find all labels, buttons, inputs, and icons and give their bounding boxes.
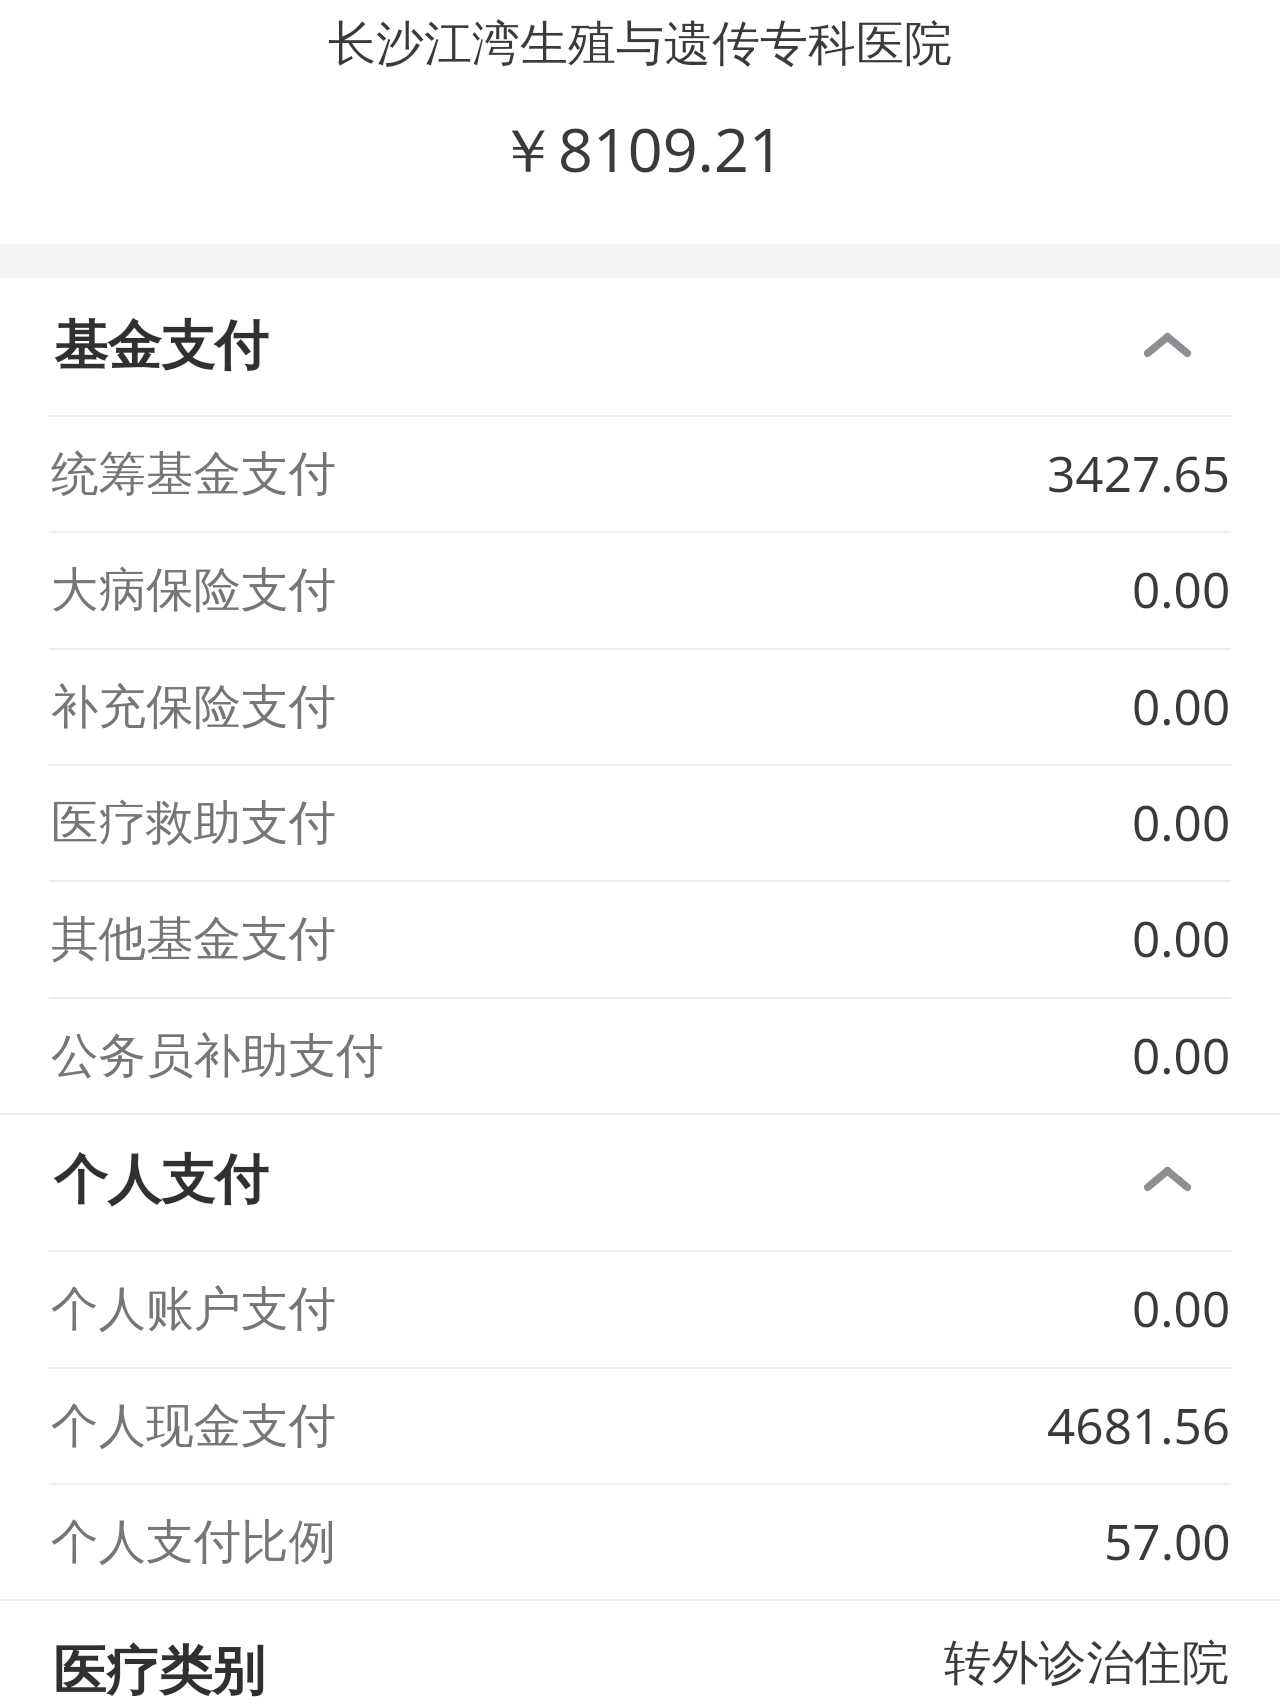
staticText: 其他基金支付: [51, 909, 336, 969]
staticText: 统筹基金支付: [51, 444, 336, 504]
staticText: 大病保险支付: [51, 560, 336, 620]
staticText: 4681.56: [1047, 1391, 1231, 1458]
button[interactable]: 个人账户支付: [0, 1252, 1280, 1366]
button[interactable]: 个人支付比例: [0, 1485, 1280, 1599]
staticText: 3427.65: [1047, 439, 1231, 506]
button[interactable]: 个人支付: [0, 1110, 1280, 1248]
staticText: 0.00: [1132, 672, 1231, 739]
staticText: 公务员补助支付: [51, 1026, 384, 1086]
staticText: 个人支付比例: [51, 1512, 336, 1572]
button[interactable]: 补充保险支付: [0, 650, 1280, 764]
other: Collapse section: [1144, 1167, 1191, 1191]
staticText: ￥8109.21: [497, 107, 784, 190]
staticText: 长沙江湾生殖与遗传专科医院: [328, 14, 952, 74]
button[interactable]: 公务员补助支付: [0, 999, 1280, 1113]
staticText: 0.00: [1132, 1274, 1231, 1341]
staticText: 0.00: [1132, 788, 1231, 855]
staticText: 医疗救助支付: [51, 793, 336, 853]
staticText: 0.00: [1132, 904, 1231, 971]
button[interactable]: 基金支付: [0, 276, 1280, 414]
staticText: 个人现金支付: [51, 1396, 336, 1456]
staticText: 0.00: [1132, 1021, 1231, 1088]
button[interactable]: 大病保险支付: [0, 533, 1280, 647]
button[interactable]: 统筹基金支付: [0, 417, 1280, 531]
button[interactable]: 医疗类别: [0, 1601, 1280, 1707]
button[interactable]: 医疗救助支付: [0, 766, 1280, 880]
staticText: 基金支付: [54, 312, 268, 379]
staticText: 个人支付: [54, 1146, 268, 1213]
button[interactable]: 个人现金支付: [0, 1369, 1280, 1483]
other: Collapse section: [1144, 333, 1191, 357]
staticText: 57.00: [1104, 1507, 1231, 1574]
staticText: 0.00: [1132, 555, 1231, 622]
staticText: 转外诊治住院: [944, 1633, 1229, 1693]
staticText: 个人账户支付: [51, 1279, 336, 1339]
button[interactable]: 其他基金支付: [0, 882, 1280, 996]
staticText: 医疗类别: [53, 1638, 265, 1705]
staticText: 补充保险支付: [51, 677, 336, 737]
